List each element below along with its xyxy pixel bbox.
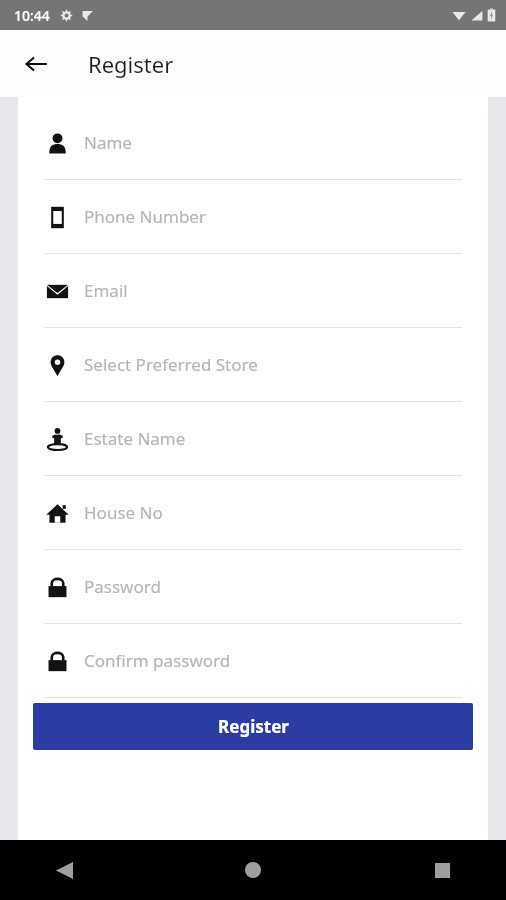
button[interactable]: House No <box>18 476 488 550</box>
button[interactable]: Email <box>18 254 488 328</box>
button[interactable]: Home <box>229 846 277 894</box>
button[interactable]: Estate Name <box>18 402 488 476</box>
staticText: Register <box>218 715 289 738</box>
button[interactable]: Password <box>18 550 488 624</box>
staticText: Password <box>84 575 161 598</box>
staticText: Confirm password <box>84 649 231 672</box>
button[interactable]: Confirm password <box>18 624 488 698</box>
staticText: Name <box>84 131 132 154</box>
button[interactable]: Register <box>33 703 473 750</box>
staticText: Select Preferred Store <box>84 353 258 376</box>
staticText: 10:44 <box>14 6 50 25</box>
staticText: Email <box>84 279 128 302</box>
button[interactable]: Back <box>14 42 58 86</box>
button[interactable]: Back <box>40 846 88 894</box>
button[interactable]: Phone Number <box>18 180 488 254</box>
staticText: Estate Name <box>84 427 186 450</box>
staticText: House No <box>84 501 163 524</box>
staticText: Register <box>88 49 174 79</box>
button[interactable]: Name <box>18 106 488 180</box>
button[interactable]: Select Preferred Store <box>18 328 488 402</box>
button[interactable]: Recent apps <box>418 846 466 894</box>
staticText: Phone Number <box>84 205 206 228</box>
